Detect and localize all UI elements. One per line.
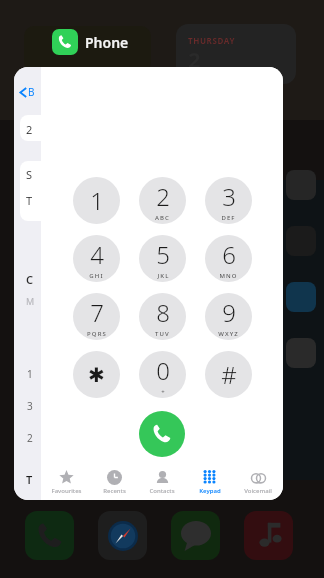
staticText: DEF: [221, 214, 236, 222]
staticText: M: [26, 295, 35, 307]
staticText: JKL: [157, 272, 170, 280]
staticText: 8: [156, 296, 170, 329]
staticText: ✱: [88, 363, 105, 386]
button[interactable]: Call: [139, 411, 185, 457]
button[interactable]: ✱: [73, 351, 120, 398]
staticText: 6: [222, 238, 236, 271]
staticText: WXYZ: [218, 330, 239, 338]
button[interactable]: Favourites: [43, 464, 89, 500]
button[interactable]: 1: [73, 177, 120, 224]
button[interactable]: 6: [205, 235, 252, 282]
staticText: THURSDAY: [188, 35, 235, 46]
staticText: Phone: [85, 33, 129, 52]
staticText: C: [26, 272, 34, 287]
staticText: 7: [90, 296, 104, 329]
button[interactable]: Keypad: [187, 464, 233, 500]
staticText: 1: [27, 367, 33, 381]
staticText: 1: [90, 184, 104, 217]
staticText: 2: [27, 431, 33, 445]
staticText: Keypad: [199, 487, 221, 495]
staticText: Recents: [103, 487, 126, 495]
staticText: Favourites: [51, 487, 82, 495]
staticText: 0: [156, 354, 170, 387]
staticText: 9: [222, 296, 236, 329]
staticText: 3: [222, 180, 236, 213]
staticText: Voicemail: [244, 487, 272, 495]
button[interactable]: 7: [73, 293, 120, 340]
button[interactable]: 2: [139, 177, 186, 224]
staticText: ABC: [155, 214, 170, 222]
staticText: GHI: [89, 272, 104, 280]
staticText: +: [161, 388, 166, 396]
staticText: 3: [27, 399, 33, 413]
button[interactable]: Recents: [91, 464, 137, 500]
staticText: MNO: [219, 272, 238, 280]
staticText: 2: [156, 180, 170, 213]
button[interactable]: 8: [139, 293, 186, 340]
staticText: #: [221, 358, 237, 391]
button[interactable]: Voicemail: [235, 464, 281, 500]
button[interactable]: 3: [205, 177, 252, 224]
staticText: 2: [188, 44, 201, 74]
button[interactable]: 5: [139, 235, 186, 282]
staticText: 5: [156, 238, 170, 271]
button[interactable]: 9: [205, 293, 252, 340]
staticText: S: [26, 167, 33, 182]
staticText: B: [28, 85, 35, 99]
staticText: 2: [26, 122, 33, 137]
staticText: TUV: [155, 330, 170, 338]
staticText: PQRS: [87, 330, 107, 338]
button[interactable]: #: [205, 351, 252, 398]
button[interactable]: 4: [73, 235, 120, 282]
staticText: Contacts: [149, 487, 175, 495]
staticText: T: [26, 193, 33, 208]
button[interactable]: 0: [139, 351, 186, 398]
staticText: 4: [90, 238, 104, 271]
staticText: T: [26, 472, 33, 487]
button[interactable]: Contacts: [139, 464, 185, 500]
